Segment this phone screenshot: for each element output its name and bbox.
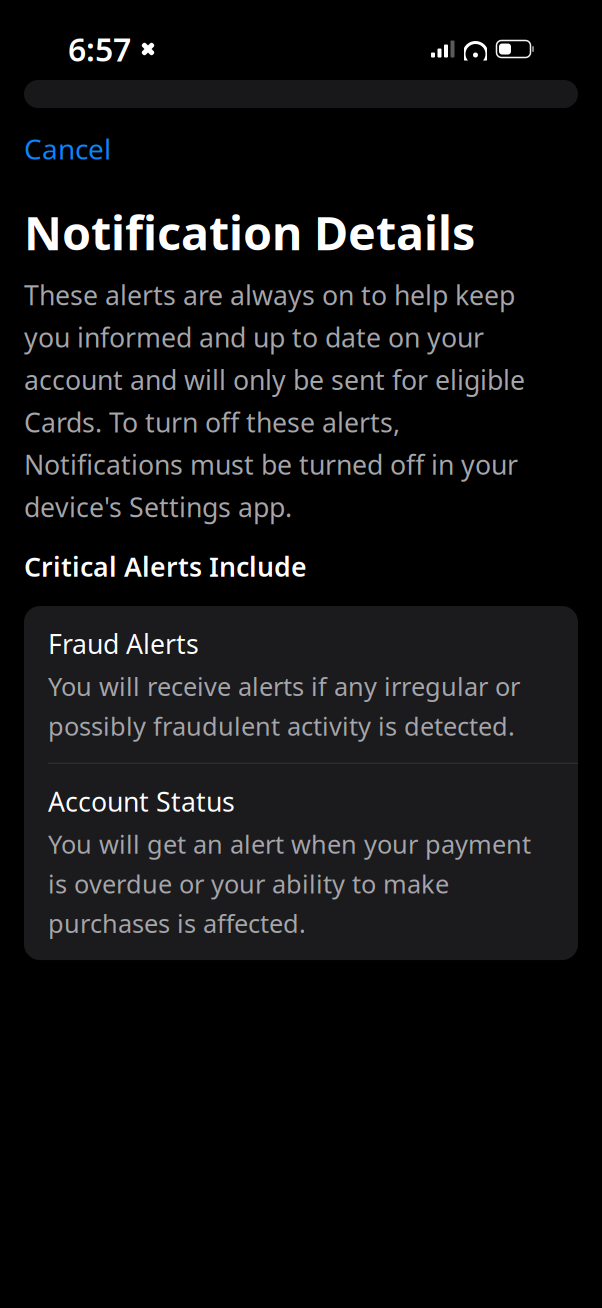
- staticText: You will receive alerts if any irregular…: [48, 669, 520, 743]
- button[interactable]: Cancel: [24, 122, 111, 175]
- staticText: These alerts are always on to help keep …: [24, 277, 525, 525]
- staticText: Cancel: [24, 130, 111, 167]
- staticText: Notification Details: [24, 201, 475, 263]
- staticText: Account Status: [48, 784, 235, 819]
- staticText: You will get an alert when your payment …: [48, 827, 531, 940]
- staticText: 6:57: [68, 28, 131, 70]
- staticText: Critical Alerts Include: [24, 549, 307, 584]
- staticText: Fraud Alerts: [48, 626, 199, 661]
